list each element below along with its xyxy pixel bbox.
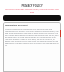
staticText: PRIVACY POLICY (0, 4, 64, 8)
staticText: Information we collect (5, 24, 28, 27)
staticText: This policy describes how we collect, us… (4, 8, 60, 13)
staticText: We are committed to protecting your pers… (5, 28, 59, 46)
